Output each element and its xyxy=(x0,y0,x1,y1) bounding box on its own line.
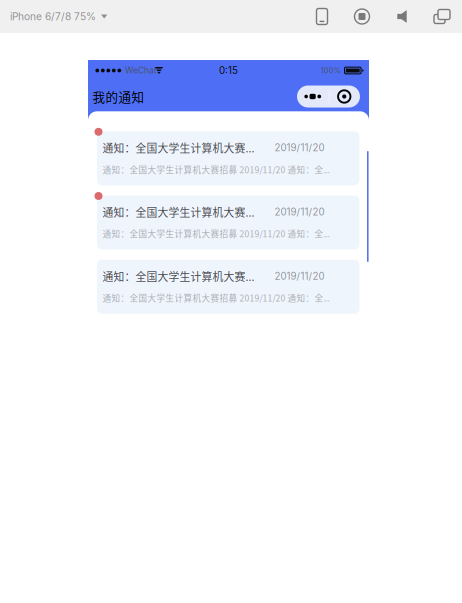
staticText: iPhone 6/7/8 75% xyxy=(10,10,96,23)
staticText: 通知：全国大学生计算机大赛招募 2019/11/20 通知：全... xyxy=(103,227,330,240)
button[interactable]: Close mini program xyxy=(328,85,360,107)
staticText: 2019/11/20 xyxy=(274,142,324,154)
button[interactable]: 通知：全国大学生计算机大赛... xyxy=(97,131,359,185)
staticText: 通知：全国大学生计算机大赛招募 2019/11/20 通知：全... xyxy=(103,163,330,176)
button[interactable]: Device preview xyxy=(302,0,342,33)
button[interactable]: More xyxy=(297,85,328,107)
button[interactable]: 通知：全国大学生计算机大赛... xyxy=(97,195,359,249)
staticText: 通知：全国大学生计算机大赛招募 2019/11/20 通知：全... xyxy=(103,292,330,304)
staticText: 通知：全国大学生计算机大赛... xyxy=(103,140,255,156)
staticText: 2019/11/20 xyxy=(274,206,324,218)
staticText: 通知：全国大学生计算机大赛... xyxy=(103,204,255,220)
button[interactable]: iPhone 6/7/8 75% xyxy=(0,0,119,33)
staticText: 我的通知 xyxy=(93,87,145,105)
staticText: WeChat xyxy=(125,65,157,76)
staticText: 2019/11/20 xyxy=(274,270,324,282)
button[interactable]: 通知：全国大学生计算机大赛... xyxy=(97,260,359,314)
staticText: 0:15 xyxy=(219,65,238,76)
staticText: 100% xyxy=(321,66,341,75)
staticText: 通知：全国大学生计算机大赛... xyxy=(103,268,255,284)
button[interactable]: Record xyxy=(342,0,382,33)
button[interactable]: Sound xyxy=(382,0,422,33)
button[interactable]: Detach window xyxy=(422,0,462,33)
